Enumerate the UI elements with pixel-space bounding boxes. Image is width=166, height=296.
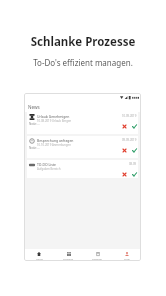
button[interactable]: Ablehnen	[122, 148, 127, 153]
staticText: Kalender	[92, 257, 103, 260]
staticText: 08.09	[129, 162, 137, 166]
staticText: Kontakte	[63, 257, 74, 260]
staticText: Profil	[124, 257, 130, 260]
button[interactable]: TO-DO Liste	[27, 160, 138, 178]
staticText: Home	[36, 257, 43, 260]
button[interactable]: Besprechung anfragen	[27, 136, 138, 158]
button[interactable]: Annehmen	[132, 148, 137, 153]
staticText: Besprechung anfragen	[37, 138, 74, 143]
staticText: News	[28, 104, 40, 110]
button[interactable]: Profil	[112, 250, 141, 260]
staticText: Schlanke Prozesse	[0, 34, 166, 50]
button[interactable]: Annehmen	[132, 124, 137, 129]
button[interactable]: Ablehnen	[122, 172, 127, 177]
staticText: To-Do's effizient managen.	[0, 57, 166, 68]
button[interactable]: Ablehnen	[122, 124, 127, 129]
button[interactable]: Home	[24, 250, 54, 260]
staticText: 10.09.2019	[122, 114, 137, 118]
staticText: Urlaub Genehmigen	[37, 114, 70, 119]
button[interactable]: Kalender	[83, 250, 112, 260]
button[interactable]: Kontakte	[54, 250, 83, 260]
button[interactable]: Annehmen	[132, 172, 137, 177]
button[interactable]: Urlaub Genehmigen	[27, 112, 138, 134]
staticText: Notiz: ...	[29, 146, 40, 150]
staticText: Aufgaben Bereich	[37, 167, 61, 171]
staticText: 10.10.2019 Anmerkungen	[37, 143, 71, 147]
staticText: Notiz: ...	[29, 122, 40, 126]
staticText: TO-DO Liste	[37, 162, 56, 167]
staticText: 10.08.2019 Urlaub Bergen	[37, 119, 72, 123]
staticText: 09.09.2019	[122, 138, 137, 142]
